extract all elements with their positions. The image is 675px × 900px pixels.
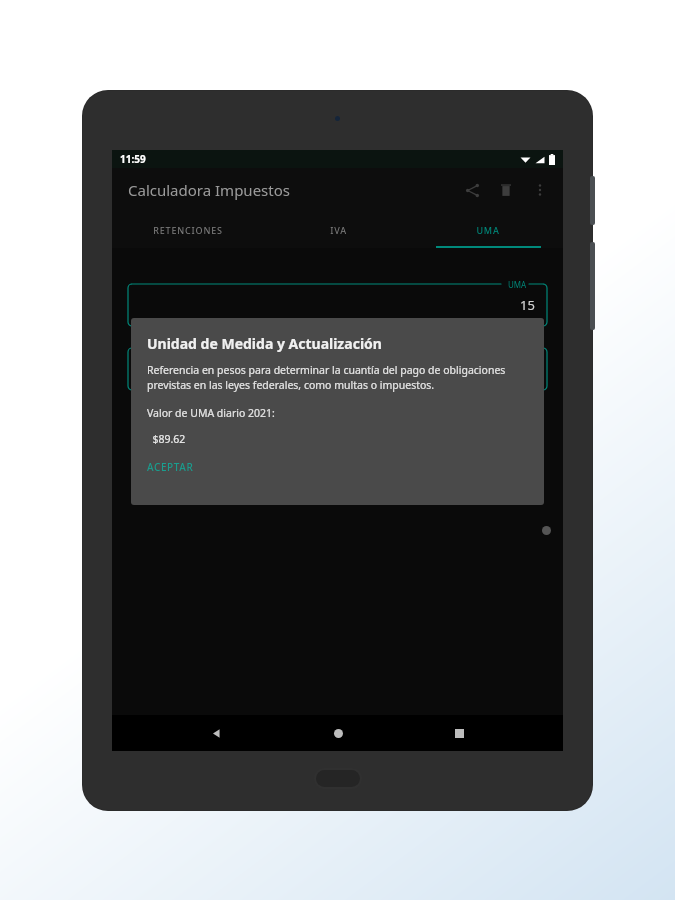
staticText: $89.62 bbox=[147, 432, 186, 446]
staticText: Valor de UMA diario 2021: bbox=[147, 406, 275, 420]
button[interactable]: Back bbox=[198, 715, 234, 751]
staticText: ACEPTAR bbox=[147, 460, 194, 474]
staticText: IVA bbox=[330, 224, 347, 236]
staticText: 15 bbox=[520, 296, 535, 314]
staticText: Calculadora Impuestos bbox=[128, 180, 290, 200]
staticText: RETENCIONES bbox=[153, 224, 223, 236]
button[interactable] bbox=[128, 348, 547, 390]
button[interactable]: UMA bbox=[128, 284, 547, 326]
staticText: UMA bbox=[508, 279, 527, 290]
button[interactable]: Home bbox=[320, 715, 356, 751]
button[interactable]: UMA bbox=[413, 212, 563, 248]
button[interactable]: ACEPTAR bbox=[147, 456, 194, 478]
button[interactable]: Share bbox=[455, 173, 489, 207]
button[interactable]: More options bbox=[523, 173, 557, 207]
button[interactable]: IVA bbox=[263, 212, 413, 248]
button[interactable]: Recent apps bbox=[441, 715, 477, 751]
staticText: Referencia en pesos para determinar la c… bbox=[147, 363, 528, 392]
button[interactable]: Delete bbox=[489, 173, 523, 207]
button[interactable]: RETENCIONES bbox=[112, 212, 263, 248]
staticText: 11:59 bbox=[120, 152, 146, 166]
staticText: UMA bbox=[476, 224, 500, 236]
staticText: Unidad de Medida y Actualización bbox=[147, 334, 382, 353]
